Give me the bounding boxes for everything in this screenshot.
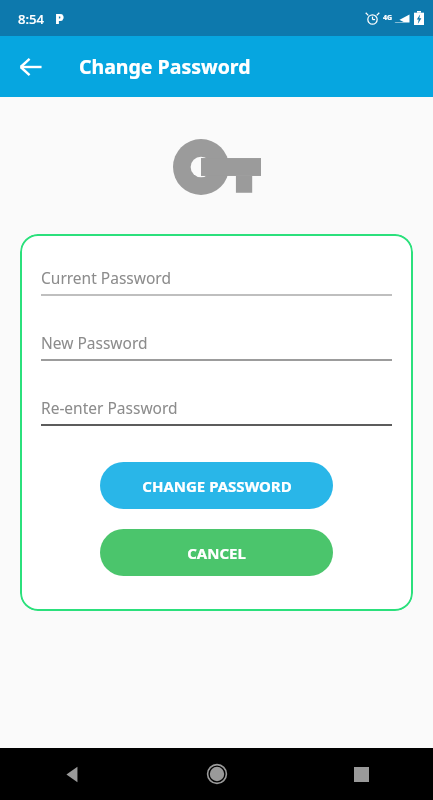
button[interactable]: Current Password [41,267,392,296]
button[interactable]: CHANGE PASSWORD [100,462,333,509]
staticText: P [55,9,64,28]
button[interactable]: New Password [41,332,392,361]
button[interactable]: Recents [289,748,433,800]
staticText: 8:54 [18,10,44,28]
button[interactable]: Back [0,748,145,800]
staticText: CANCEL [187,543,246,563]
staticText: Current Password [41,267,171,288]
button[interactable]: Back [9,45,53,89]
staticText: CHANGE PASSWORD [142,476,292,496]
button[interactable]: Re-enter Password [41,397,392,426]
staticText: New Password [41,332,148,353]
button[interactable]: CANCEL [100,529,333,576]
staticText: 4G [383,13,393,23]
staticText: Change Password [79,53,251,80]
staticText: Re-enter Password [41,397,178,418]
button[interactable]: Home [145,748,289,800]
